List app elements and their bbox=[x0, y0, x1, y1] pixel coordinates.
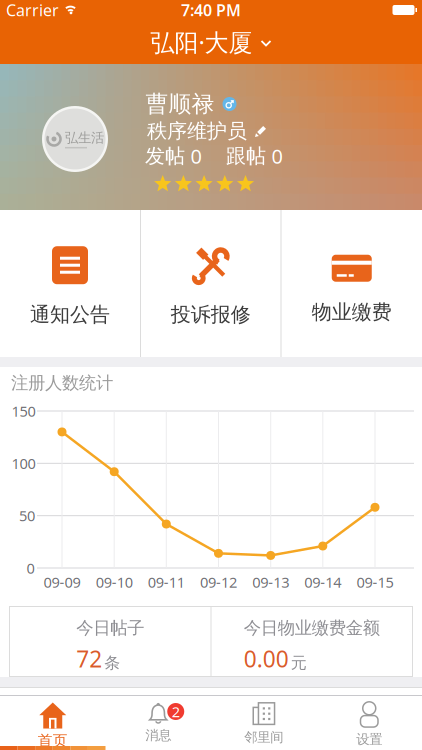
staticText: 元 bbox=[291, 653, 307, 673]
staticText: 09-14 bbox=[304, 572, 341, 592]
button[interactable]: 曹顺禄 bbox=[145, 90, 236, 118]
staticText: 72 bbox=[76, 644, 102, 674]
staticText: 09-11 bbox=[148, 572, 185, 592]
staticText: 注册人数统计 bbox=[11, 372, 113, 394]
staticText: 设置 bbox=[356, 731, 382, 747]
staticText: 弘生活 bbox=[65, 130, 104, 146]
staticText: 09-15 bbox=[356, 572, 393, 592]
staticText: 消息 bbox=[145, 727, 171, 743]
staticText: 发帖 bbox=[145, 144, 185, 168]
button[interactable]: 2 bbox=[105, 695, 211, 750]
staticText: 今日帖子 bbox=[76, 617, 144, 639]
staticText: 曹顺禄 bbox=[145, 90, 214, 118]
staticText: 秩序维护员 bbox=[147, 119, 247, 143]
staticText: 150 bbox=[11, 401, 35, 421]
staticText: 2 bbox=[172, 702, 180, 721]
staticText: 通知公告 bbox=[30, 302, 110, 327]
staticText: 条 bbox=[104, 653, 120, 673]
button[interactable]: 物业缴费 bbox=[281, 210, 422, 357]
staticText: 09-09 bbox=[43, 572, 80, 592]
button[interactable]: 首页 bbox=[0, 695, 105, 750]
staticText: Carrier bbox=[6, 0, 59, 21]
staticText: 50 bbox=[19, 506, 35, 525]
button[interactable]: 秩序维护员 bbox=[147, 119, 269, 143]
staticText: 09-13 bbox=[252, 572, 289, 592]
staticText: 0.00 bbox=[244, 644, 289, 674]
staticText: 投诉报修 bbox=[171, 302, 251, 327]
button[interactable]: 弘阳·大厦 bbox=[150, 26, 271, 58]
staticText: 弘阳·大厦 bbox=[150, 26, 252, 58]
staticText: 今日物业缴费金额 bbox=[244, 617, 380, 639]
button[interactable]: 通知公告 bbox=[0, 210, 140, 357]
staticText: 09-10 bbox=[96, 572, 133, 592]
staticText: 跟帖 bbox=[226, 144, 266, 168]
staticText: 物业缴费 bbox=[312, 300, 392, 324]
button[interactable]: 邻里间 bbox=[211, 695, 316, 750]
staticText: 7:40 PM bbox=[181, 0, 241, 21]
button[interactable]: 设置 bbox=[316, 695, 422, 750]
staticText: 100 bbox=[11, 454, 35, 473]
staticText: 邻里间 bbox=[244, 729, 283, 745]
button[interactable]: 投诉报修 bbox=[141, 210, 280, 357]
staticText: 0 bbox=[190, 143, 201, 169]
staticText: 09-12 bbox=[200, 572, 237, 592]
staticText: 0 bbox=[26, 558, 34, 578]
staticText: 0 bbox=[271, 143, 282, 169]
staticText: 首页 bbox=[38, 731, 68, 749]
